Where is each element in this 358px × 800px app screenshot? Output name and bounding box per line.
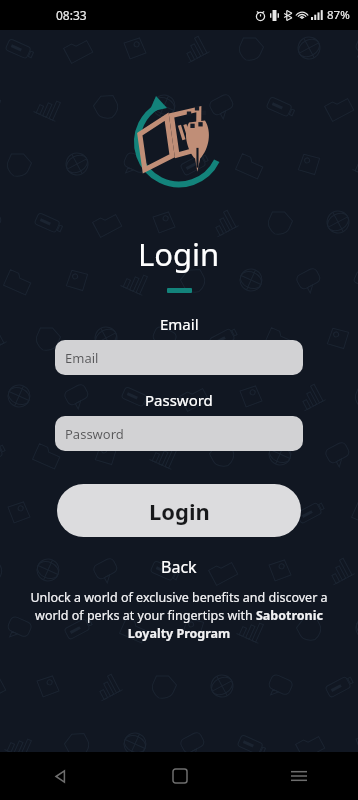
button[interactable]: Back bbox=[0, 752, 120, 800]
button[interactable]: Login bbox=[57, 484, 301, 537]
button[interactable]: Password bbox=[55, 416, 303, 451]
button[interactable]: Email bbox=[55, 340, 303, 375]
staticText: Password bbox=[65, 425, 124, 443]
staticText: Login bbox=[138, 233, 220, 275]
staticText: Email bbox=[65, 349, 99, 367]
staticText: Login bbox=[149, 496, 210, 526]
button[interactable]: Recent apps bbox=[239, 752, 358, 800]
button[interactable]: Back bbox=[145, 553, 213, 581]
button[interactable]: Home bbox=[120, 752, 239, 800]
staticText: Email bbox=[160, 314, 199, 334]
staticText: 87% bbox=[327, 7, 350, 23]
staticText: Unlock a world of exclusive benefits and… bbox=[27, 589, 331, 642]
staticText: 08:33 bbox=[56, 7, 87, 23]
staticText: Back bbox=[161, 556, 197, 578]
staticText: Password bbox=[145, 390, 213, 410]
